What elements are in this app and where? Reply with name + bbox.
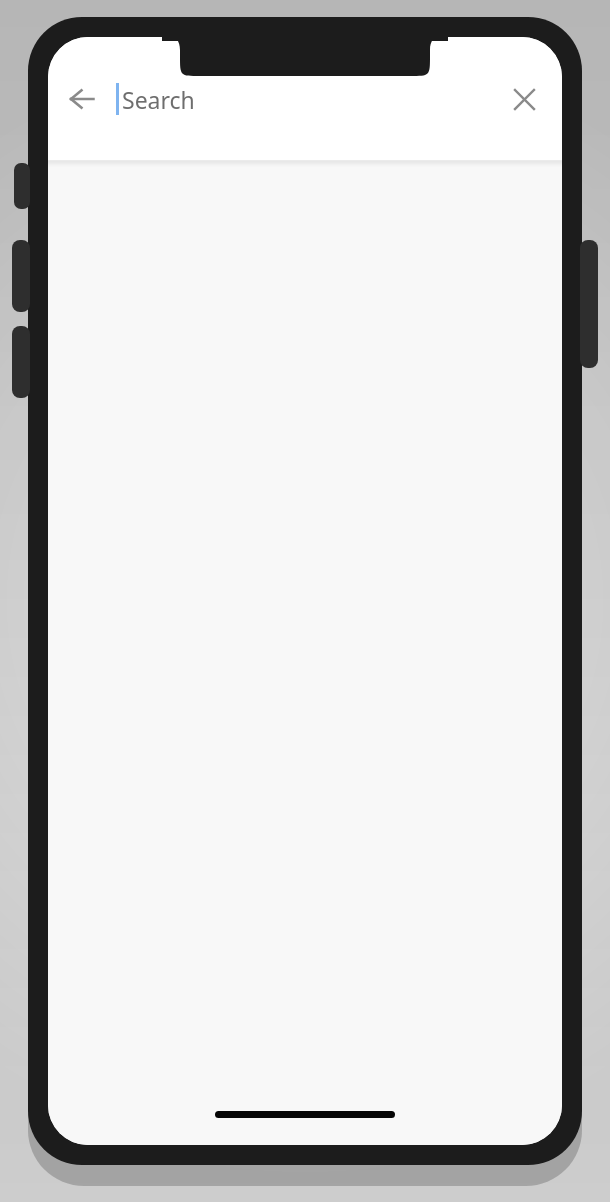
button[interactable]: Search: [116, 69, 498, 129]
staticText: Search: [122, 84, 195, 115]
button[interactable]: Navigate up: [58, 75, 106, 123]
button[interactable]: Clear search: [498, 73, 550, 125]
